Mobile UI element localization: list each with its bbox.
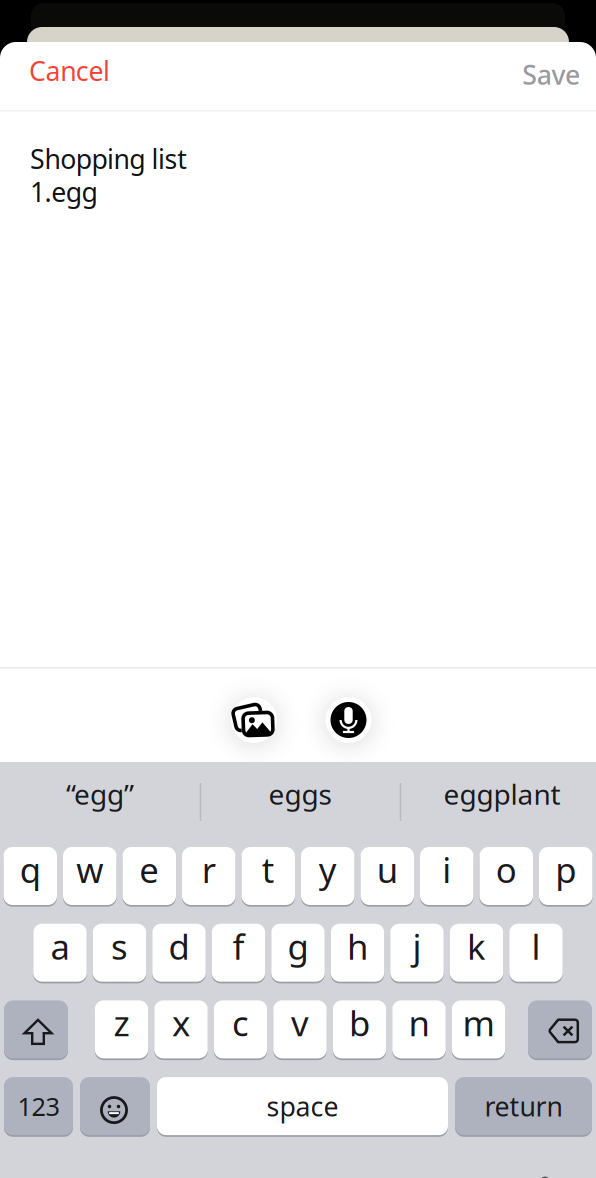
staticText: 1.egg — [30, 174, 97, 209]
button[interactable]: 123 — [4, 1076, 73, 1136]
button[interactable]: Save — [420, 61, 580, 87]
button[interactable]: Add photo — [230, 696, 278, 744]
button[interactable]: j — [390, 923, 444, 983]
button[interactable]: space — [157, 1076, 448, 1136]
staticText: n — [408, 1000, 429, 1046]
staticText: q — [20, 846, 41, 892]
button[interactable]: d — [152, 923, 206, 983]
staticText: i — [442, 846, 451, 892]
staticText: x — [172, 1000, 190, 1046]
staticText: f — [232, 923, 244, 969]
button[interactable]: w — [63, 846, 116, 906]
staticText: b — [349, 1000, 370, 1046]
button[interactable]: Emoji — [80, 1076, 150, 1136]
staticText: 123 — [17, 1089, 59, 1123]
button[interactable]: Cancel — [29, 53, 110, 88]
button[interactable]: o — [479, 846, 533, 906]
staticText: e — [139, 846, 159, 892]
button[interactable]: Dictate — [324, 696, 372, 744]
button[interactable]: y — [301, 846, 354, 906]
button[interactable]: Shift — [4, 999, 68, 1059]
button[interactable]: eggs — [205, 763, 395, 825]
button[interactable]: n — [392, 999, 446, 1059]
button[interactable]: r — [182, 846, 235, 906]
staticText: o — [496, 846, 517, 892]
staticText: Save — [522, 57, 580, 92]
button[interactable]: z — [95, 999, 148, 1059]
button[interactable]: u — [360, 846, 414, 906]
staticText: u — [377, 846, 398, 892]
button[interactable]: v — [273, 999, 327, 1059]
button[interactable]: k — [450, 923, 503, 983]
button[interactable]: g — [271, 923, 325, 983]
button[interactable]: i — [420, 846, 473, 906]
button[interactable]: c — [214, 999, 267, 1059]
button[interactable]: e — [122, 846, 176, 906]
staticText: v — [291, 1000, 309, 1046]
staticText: m — [462, 1000, 494, 1046]
button[interactable]: x — [154, 999, 208, 1059]
staticText: p — [555, 846, 576, 892]
staticText: s — [111, 923, 128, 969]
staticText: w — [76, 846, 103, 892]
button[interactable]: “egg” — [5, 763, 195, 825]
staticText: l — [531, 923, 540, 969]
button[interactable]: q — [3, 846, 57, 906]
staticText: eggs — [268, 775, 331, 813]
staticText: j — [412, 923, 421, 969]
staticText: g — [287, 923, 308, 969]
staticText: eggplant — [443, 775, 560, 813]
button[interactable]: l — [509, 923, 563, 983]
button[interactable]: a — [33, 923, 87, 983]
staticText: y — [319, 846, 337, 892]
button[interactable]: eggplant — [407, 763, 596, 825]
staticText: r — [202, 846, 216, 892]
staticText: c — [232, 1000, 249, 1046]
staticText: d — [168, 923, 189, 969]
button[interactable]: p — [539, 846, 592, 906]
staticText: return — [484, 1088, 562, 1124]
staticText: t — [262, 846, 275, 892]
staticText: Cancel — [29, 53, 110, 88]
staticText: space — [266, 1088, 338, 1124]
button[interactable]: t — [241, 846, 295, 906]
button[interactable]: h — [331, 923, 384, 983]
button[interactable]: m — [452, 999, 505, 1059]
staticText: h — [347, 923, 368, 969]
staticText: Shopping list — [30, 141, 187, 176]
staticText: k — [467, 923, 486, 969]
button[interactable]: return — [455, 1076, 592, 1136]
button[interactable]: Delete — [528, 999, 592, 1059]
staticText: “egg” — [66, 775, 134, 813]
button[interactable]: f — [212, 923, 265, 983]
staticText: z — [113, 1000, 129, 1046]
button[interactable]: s — [93, 923, 146, 983]
staticText: a — [50, 923, 69, 969]
button[interactable]: b — [333, 999, 386, 1059]
